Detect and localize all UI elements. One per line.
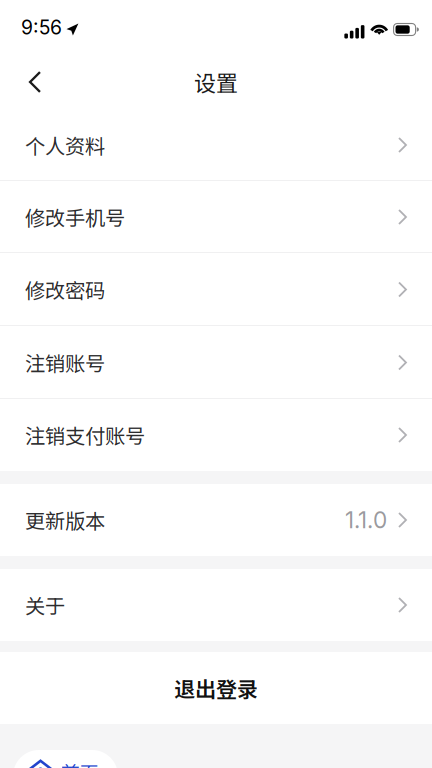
staticText: 首页 [61, 758, 99, 768]
button[interactable]: 修改手机号 [0, 181, 432, 253]
button[interactable]: 个人资料 [0, 109, 432, 181]
button[interactable]: 退出登录 [0, 652, 432, 724]
staticText: 注销支付账号 [25, 420, 145, 450]
button[interactable]: 更新版本 [0, 484, 432, 556]
staticText: 个人资料 [25, 130, 105, 160]
staticText: 修改手机号 [25, 202, 125, 232]
button[interactable]: 关于 [0, 569, 432, 641]
button[interactable]: 注销支付账号 [0, 399, 432, 471]
button[interactable]: 修改密码 [0, 253, 432, 326]
staticText: 1.1.0 [345, 506, 387, 534]
staticText: 关于 [25, 590, 65, 620]
staticText: 修改密码 [25, 275, 105, 304]
staticText: 更新版本 [25, 505, 105, 535]
button[interactable]: 注销账号 [0, 326, 432, 399]
staticText: 注销账号 [25, 348, 105, 377]
button[interactable]: 首页 [13, 750, 118, 768]
button[interactable]: Back [12, 59, 58, 105]
staticText: 退出登录 [174, 673, 258, 703]
staticText: 9:56 [21, 16, 62, 39]
staticText: 设置 [194, 66, 238, 98]
